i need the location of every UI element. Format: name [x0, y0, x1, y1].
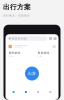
- staticText: 搜索目的地: [12, 37, 27, 40]
- staticText: 34 分钟: [37, 55, 41, 57]
- button[interactable]: Tab: [7, 90, 20, 94]
- staticText: 最快路线: [8, 51, 20, 54]
- button[interactable]: Tab: [44, 90, 56, 94]
- button[interactable]: Tab: [20, 90, 32, 94]
- staticText: 实时路况 · 智能推荐: [3, 14, 30, 17]
- staticText: 出发: [28, 71, 36, 76]
- button[interactable]: Filter: [49, 37, 52, 40]
- button[interactable]: Tab: [32, 90, 44, 94]
- staticText: 出行方案: [3, 3, 31, 11]
- button[interactable]: 出发: [25, 66, 39, 80]
- staticText: 最省路线: [37, 51, 49, 54]
- staticText: 28 分钟: [8, 55, 12, 57]
